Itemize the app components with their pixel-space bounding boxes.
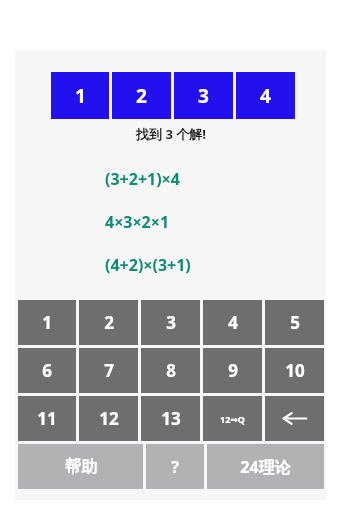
button[interactable]: 2 <box>79 300 138 345</box>
button[interactable]: 5 <box>265 300 324 345</box>
button[interactable]: 11 <box>18 396 76 441</box>
staticText: 5 <box>290 311 300 334</box>
staticText: 4 <box>260 83 271 109</box>
button[interactable]: 7 <box>79 348 138 393</box>
button[interactable]: 24理论 <box>207 444 324 489</box>
staticText: 3 <box>198 83 209 109</box>
staticText: 4×3×2×1 <box>105 211 170 233</box>
button[interactable]: 12⇒Q <box>203 396 262 441</box>
staticText: 9 <box>228 359 238 382</box>
button[interactable]: Backspace <box>265 396 324 441</box>
staticText: 8 <box>166 359 176 382</box>
staticText: 1 <box>42 311 52 334</box>
staticText: 10 <box>285 359 305 382</box>
staticText: 7 <box>104 359 114 382</box>
staticText: 4 <box>228 311 238 334</box>
button[interactable]: 3 <box>141 300 200 345</box>
staticText: (4+2)×(3+1) <box>105 254 191 276</box>
staticText: 11 <box>37 407 57 430</box>
button[interactable]: 9 <box>203 348 262 393</box>
staticText: 13 <box>161 407 181 430</box>
button[interactable]: 2 <box>112 72 171 119</box>
button[interactable]: 12 <box>79 396 138 441</box>
button[interactable]: (4+2)×(3+1) <box>105 243 265 286</box>
button[interactable]: (3+2+1)×4 <box>105 157 265 200</box>
staticText: 帮助 <box>65 457 97 477</box>
staticText: 6 <box>42 359 52 382</box>
staticText: (3+2+1)×4 <box>105 168 180 190</box>
staticText: 12 <box>99 407 119 430</box>
staticText: 12⇒Q <box>220 413 245 425</box>
button[interactable]: 1 <box>51 72 109 119</box>
staticText: 24理论 <box>240 456 291 478</box>
staticText: 1 <box>75 83 86 109</box>
staticText: 2 <box>104 311 114 334</box>
button[interactable]: 帮助 <box>18 444 143 489</box>
button[interactable]: 1 <box>18 300 76 345</box>
staticText: ? <box>171 456 179 478</box>
button[interactable]: 10 <box>265 348 324 393</box>
button[interactable]: 6 <box>18 348 76 393</box>
button[interactable]: 8 <box>141 348 200 393</box>
button[interactable]: 4 <box>203 300 262 345</box>
staticText: 找到 3 个解! <box>136 125 206 143</box>
button[interactable]: 13 <box>141 396 200 441</box>
button[interactable]: ? <box>146 444 204 489</box>
staticText: 3 <box>166 311 176 334</box>
button[interactable]: 4 <box>236 72 295 119</box>
staticText: 2 <box>136 83 147 109</box>
button[interactable]: 4×3×2×1 <box>105 200 265 243</box>
button[interactable]: 3 <box>174 72 233 119</box>
